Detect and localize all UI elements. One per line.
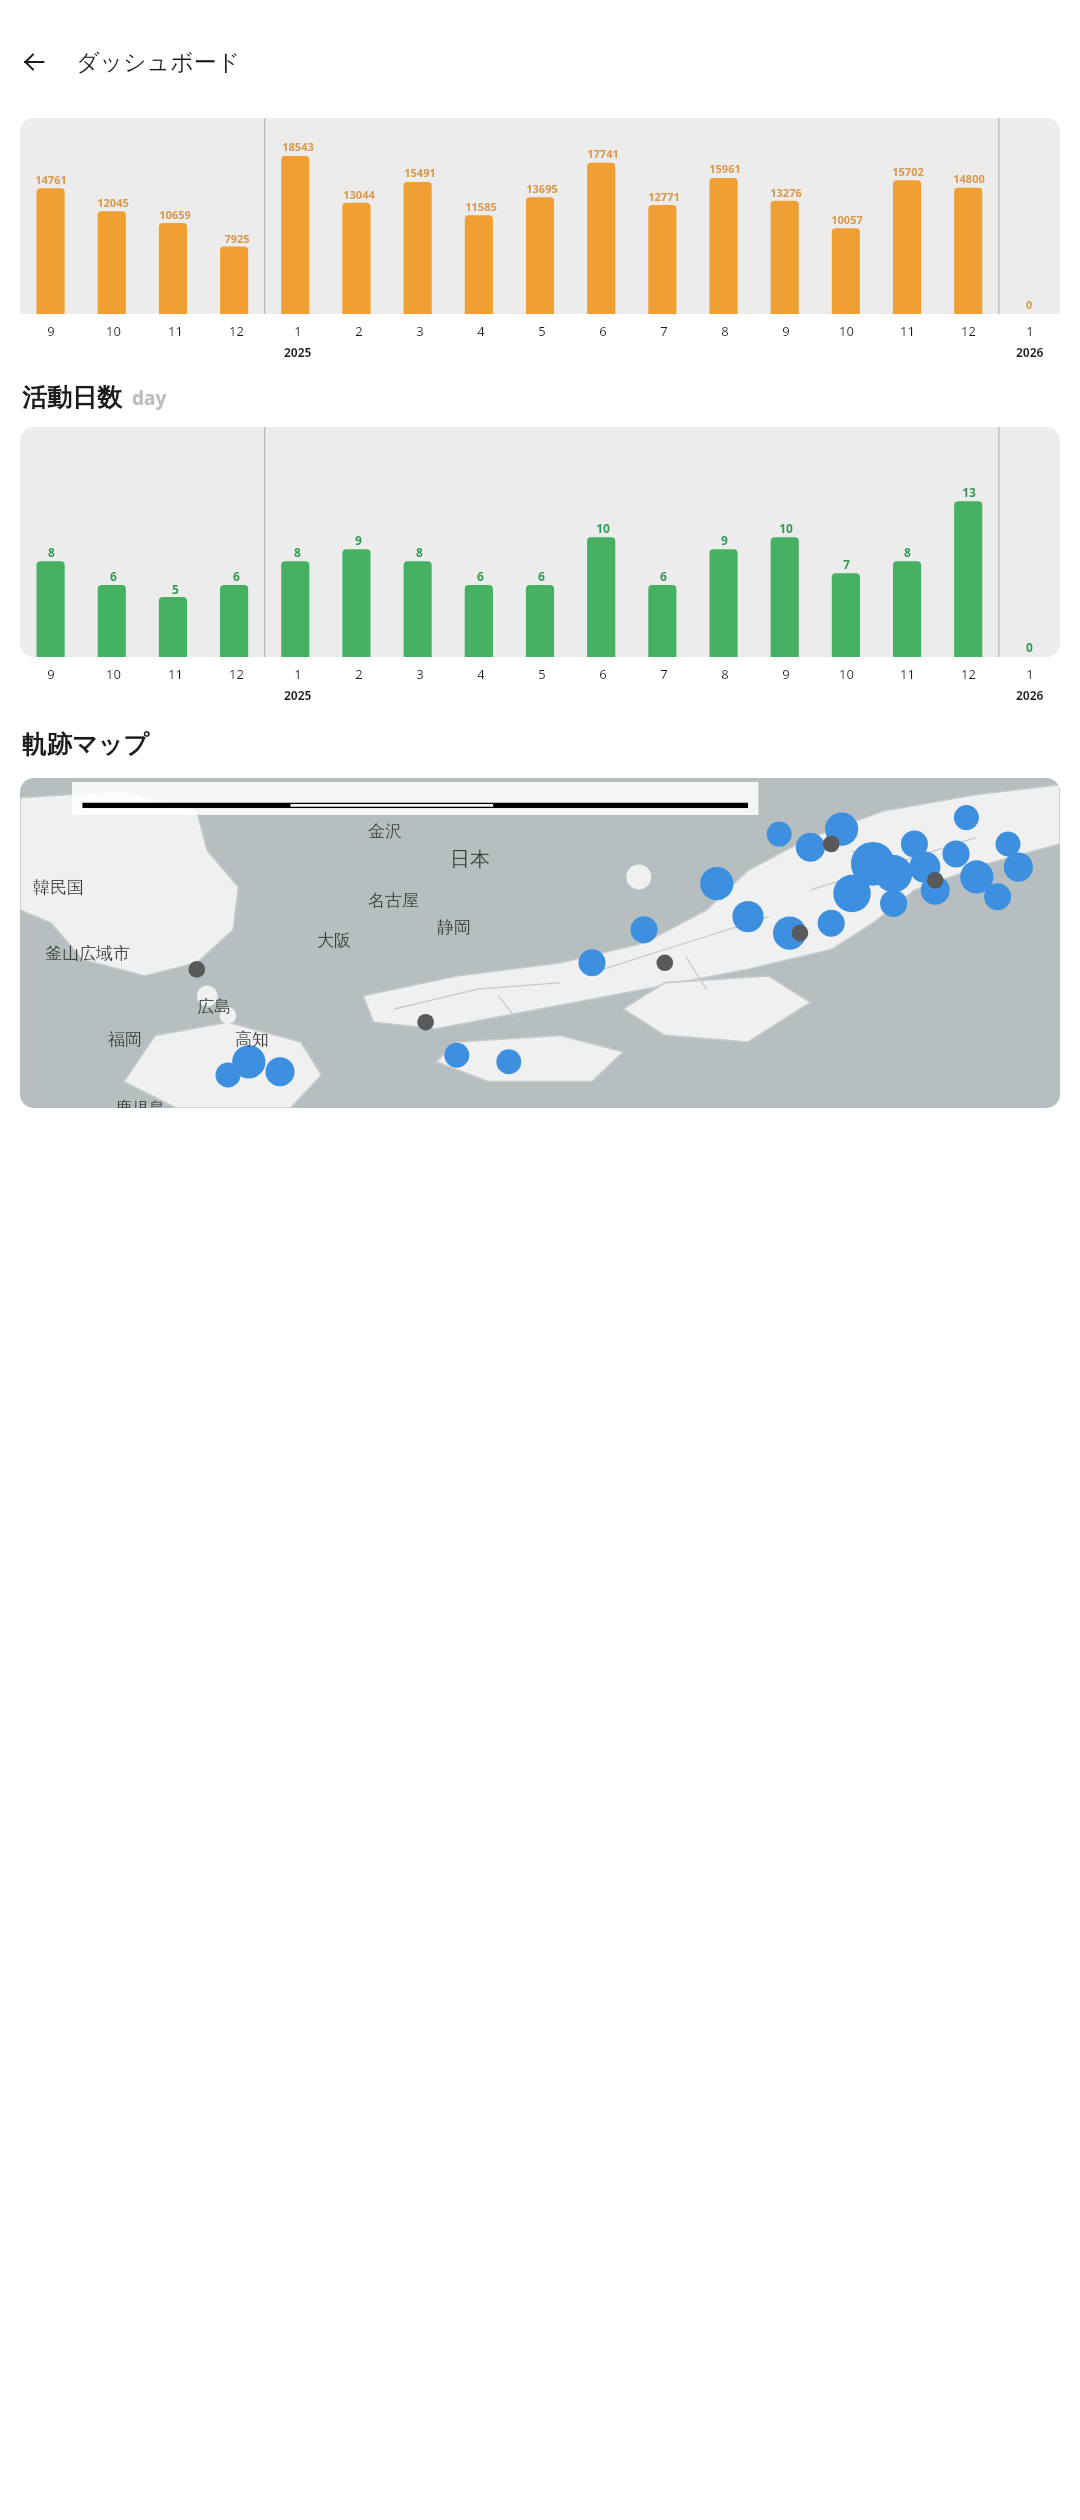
staticText: 日本 — [450, 847, 490, 872]
staticText: 15961 — [709, 161, 741, 176]
staticText: ダッシュボード — [76, 48, 241, 77]
staticText: 名古屋 — [368, 890, 419, 911]
staticText: 12 — [229, 322, 244, 340]
staticText: 2025 — [284, 687, 312, 703]
staticText: 9 — [47, 322, 55, 340]
staticText: 活動日数 — [22, 382, 122, 413]
staticText: 6 — [599, 322, 607, 340]
staticText: 軌跡マップ — [22, 729, 149, 760]
staticText: 福岡 — [108, 1029, 142, 1050]
staticText: 10 — [779, 520, 793, 536]
staticText: 7925 — [224, 231, 250, 246]
staticText: 13695 — [526, 181, 558, 196]
staticText: 17741 — [587, 146, 619, 161]
staticText: 10 — [839, 665, 854, 683]
staticText: 11585 — [465, 199, 497, 214]
staticText: 12 — [961, 322, 976, 340]
staticText: 9 — [721, 532, 728, 548]
staticText: 13276 — [770, 185, 802, 200]
staticText: 8 — [48, 544, 55, 560]
staticText: 広島 — [197, 996, 231, 1017]
staticText: 12771 — [648, 189, 680, 204]
staticText: 2 — [355, 322, 363, 340]
staticText: 14761 — [35, 172, 67, 187]
staticText: 10 — [839, 322, 854, 340]
staticText: 金沢 — [368, 821, 402, 842]
button[interactable]: 軌跡マップ — [20, 778, 1060, 1108]
staticText: 8 — [416, 544, 423, 560]
staticText: 5 — [172, 581, 179, 597]
staticText: 10659 — [159, 207, 191, 222]
button[interactable]: 14761 — [20, 118, 1060, 314]
staticText: 12 — [961, 665, 976, 683]
staticText: 6 — [660, 568, 667, 584]
staticText: 9 — [355, 532, 362, 548]
staticText: 7 — [843, 556, 850, 572]
staticText: 鹿児島 — [115, 1098, 166, 1108]
staticText: 1 — [1026, 665, 1034, 683]
staticText: 10 — [596, 520, 610, 536]
button[interactable]: Back — [10, 38, 58, 86]
staticText: 8 — [294, 544, 301, 560]
staticText: 15491 — [404, 165, 436, 180]
staticText: day — [132, 385, 167, 411]
staticText: 11 — [900, 665, 915, 683]
staticText: 3 — [416, 322, 424, 340]
staticText: 3 — [416, 665, 424, 683]
staticText: 4 — [477, 665, 485, 683]
staticText: 11 — [168, 322, 183, 340]
staticText: 2026 — [1016, 687, 1044, 703]
staticText: 10 — [106, 665, 121, 683]
staticText: 大阪 — [317, 930, 351, 951]
staticText: 5 — [538, 665, 546, 683]
button[interactable]: 8 — [20, 427, 1060, 657]
staticText: 12 — [229, 665, 244, 683]
staticText: 9 — [782, 665, 790, 683]
staticText: 0 — [1026, 297, 1033, 312]
staticText: 高知 — [235, 1029, 269, 1050]
staticText: 15702 — [892, 164, 924, 179]
staticText: 12045 — [97, 195, 129, 210]
staticText: 6 — [233, 568, 240, 584]
staticText: 1 — [1026, 322, 1034, 340]
staticText: 9 — [47, 665, 55, 683]
staticText: 2026 — [1016, 344, 1044, 360]
staticText: 0 — [1026, 639, 1033, 655]
staticText: 韓民国 — [33, 877, 84, 898]
staticText: 6 — [110, 568, 117, 584]
staticText: 9 — [782, 322, 790, 340]
staticText: 18543 — [282, 139, 314, 154]
staticText: 8 — [904, 544, 911, 560]
staticText: 13 — [962, 484, 976, 500]
staticText: 静岡 — [437, 917, 471, 938]
staticText: 11 — [900, 322, 915, 340]
staticText: 10 — [106, 322, 121, 340]
staticText: 4 — [477, 322, 485, 340]
staticText: 1 — [294, 322, 302, 340]
staticText: 6 — [599, 665, 607, 683]
staticText: 13044 — [343, 187, 375, 202]
staticText: 8 — [721, 322, 729, 340]
staticText: 1 — [294, 665, 302, 683]
staticText: 8 — [721, 665, 729, 683]
staticText: 釜山広域市 — [45, 943, 130, 964]
staticText: 5 — [538, 322, 546, 340]
staticText: 7 — [660, 322, 668, 340]
staticText: 2 — [355, 665, 363, 683]
staticText: 7 — [660, 665, 668, 683]
staticText: 2025 — [284, 344, 312, 360]
staticText: 10057 — [831, 212, 863, 227]
staticText: 11 — [168, 665, 183, 683]
staticText: 6 — [477, 568, 484, 584]
staticText: 6 — [538, 568, 545, 584]
staticText: 14800 — [953, 171, 985, 186]
